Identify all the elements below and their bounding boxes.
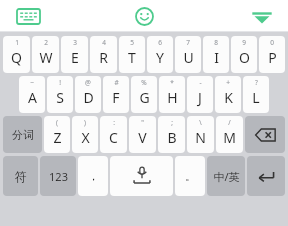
staticText: Z — [53, 128, 62, 147]
staticText: @ — [85, 78, 91, 87]
staticText: % — [141, 78, 147, 87]
button[interactable]: @ — [75, 76, 101, 113]
staticText: D — [83, 88, 94, 107]
staticText: / — [228, 118, 231, 127]
button[interactable]: 9 — [231, 36, 257, 73]
button[interactable]: : — [100, 116, 127, 153]
staticText: F — [112, 88, 120, 107]
staticText: K — [224, 88, 233, 107]
button[interactable]: 符 — [3, 156, 38, 196]
button[interactable]: Enter — [247, 156, 285, 196]
staticText: 。 — [185, 169, 196, 183]
staticText: 3 — [73, 38, 77, 47]
staticText: I — [214, 48, 219, 67]
button[interactable]: 3 — [61, 36, 88, 73]
staticText: ; — [171, 118, 173, 127]
staticText: B — [167, 128, 177, 147]
button[interactable]: ) — [72, 116, 98, 153]
button[interactable]: 1 — [3, 36, 30, 73]
staticText: 123 — [49, 169, 68, 184]
staticText: E — [71, 48, 79, 67]
staticText: S — [56, 88, 64, 107]
button[interactable]: \ — [187, 116, 214, 153]
button[interactable]: Keyboard layout — [10, 2, 46, 30]
button[interactable]: ? — [243, 76, 269, 113]
staticText: Y — [156, 48, 164, 67]
button[interactable]: Hide keyboard — [244, 2, 280, 30]
button[interactable]: * — [159, 76, 185, 113]
staticText: \ — [199, 118, 202, 127]
staticText: ) — [84, 118, 86, 127]
button[interactable]: ; — [158, 116, 185, 153]
staticText: M — [223, 128, 236, 147]
staticText: 符 — [15, 169, 27, 184]
staticText: ! — [59, 78, 61, 87]
staticText: P — [268, 48, 277, 67]
staticText: L — [252, 88, 260, 107]
button[interactable]: 6 — [147, 36, 173, 73]
staticText: 6 — [158, 38, 162, 47]
button[interactable]: ~ — [19, 76, 45, 113]
staticText: 4 — [102, 38, 106, 47]
button[interactable]: 分词 — [3, 116, 42, 153]
staticText: * — [170, 78, 174, 87]
button[interactable]: 8 — [203, 36, 229, 73]
button[interactable]: 0 — [259, 36, 285, 73]
button[interactable]: % — [131, 76, 157, 113]
staticText: O — [239, 48, 250, 67]
staticText: J — [198, 88, 202, 107]
staticText: G — [139, 88, 150, 107]
button[interactable]: ， — [78, 156, 108, 196]
staticText: H — [167, 88, 178, 107]
staticText: + — [226, 78, 230, 87]
button[interactable]: " — [129, 116, 156, 153]
button[interactable]: 123 — [40, 156, 76, 196]
button[interactable]: Backspace — [245, 116, 285, 153]
staticText: - — [199, 78, 202, 87]
button[interactable]: Space, voice input — [110, 156, 173, 196]
staticText: 分词 — [12, 128, 34, 142]
staticText: T — [128, 48, 136, 67]
button[interactable]: / — [216, 116, 243, 153]
button[interactable]: 中/英 — [207, 156, 245, 196]
button[interactable]: ! — [47, 76, 73, 113]
staticText: 0 — [270, 38, 274, 47]
staticText: N — [195, 128, 206, 147]
staticText: 9 — [242, 38, 246, 47]
button[interactable]: 4 — [90, 36, 117, 73]
staticText: : — [113, 118, 115, 127]
staticText: V — [138, 128, 147, 147]
staticText: # — [114, 78, 119, 87]
staticText: 中/英 — [213, 169, 240, 184]
staticText: 7 — [186, 38, 190, 47]
button[interactable]: ( — [44, 116, 70, 153]
button[interactable]: # — [103, 76, 129, 113]
staticText: 2 — [44, 38, 48, 47]
button[interactable]: 2 — [32, 36, 59, 73]
staticText: 5 — [130, 38, 134, 47]
staticText: R — [99, 48, 108, 67]
staticText: Q — [11, 48, 22, 67]
button[interactable]: + — [215, 76, 241, 113]
button[interactable]: 5 — [119, 36, 145, 73]
staticText: " — [141, 118, 144, 127]
staticText: W — [39, 48, 53, 67]
staticText: 1 — [15, 38, 19, 47]
button[interactable]: 。 — [175, 156, 205, 196]
staticText: ~ — [30, 78, 34, 87]
staticText: ( — [56, 118, 58, 127]
button[interactable]: - — [187, 76, 213, 113]
button[interactable]: Emoji — [129, 1, 159, 31]
staticText: ， — [88, 169, 99, 183]
staticText: 8 — [214, 38, 218, 47]
staticText: ? — [255, 78, 258, 87]
staticText: X — [81, 128, 90, 147]
staticText: C — [109, 128, 118, 147]
staticText: U — [183, 48, 194, 67]
button[interactable]: 7 — [175, 36, 201, 73]
staticText: A — [28, 88, 37, 107]
